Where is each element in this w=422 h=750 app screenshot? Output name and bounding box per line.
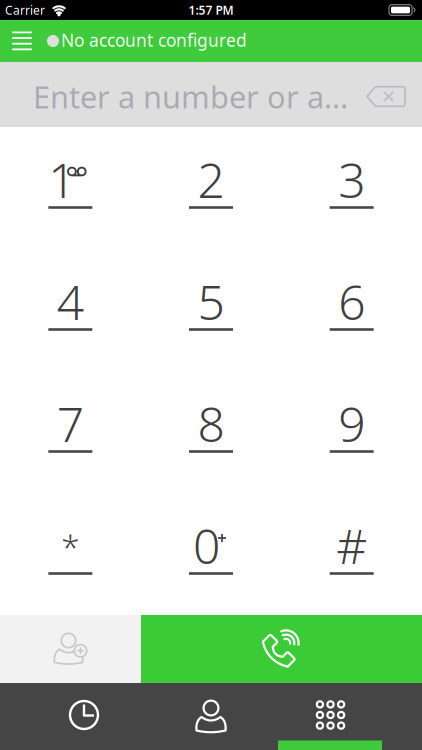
staticText: 3 [338, 148, 365, 211]
staticText: Carrier [5, 2, 45, 18]
button[interactable]: 7 [0, 371, 141, 493]
button[interactable]: 6 [281, 249, 422, 371]
button[interactable]: Call [141, 615, 422, 683]
staticText: * [61, 524, 79, 569]
staticText: 7 [57, 392, 84, 455]
button[interactable]: History [0, 683, 141, 750]
button[interactable]: # [281, 493, 422, 615]
button[interactable]: 9 [281, 371, 422, 493]
button[interactable]: Delete [360, 74, 412, 118]
staticText: Enter a number or a... [33, 76, 348, 117]
button[interactable]: 1 [0, 127, 141, 249]
button[interactable]: 8 [141, 371, 281, 493]
button[interactable]: Menu [0, 20, 44, 62]
button[interactable]: Dialer [281, 683, 422, 750]
staticText: 1 [48, 148, 75, 211]
button[interactable]: 4 [0, 249, 141, 371]
staticText: 1:57 PM [188, 2, 233, 18]
staticText: 8 [197, 392, 224, 455]
staticText: 5 [197, 270, 224, 333]
button[interactable]: 2 [141, 127, 281, 249]
staticText: No account configured [61, 28, 247, 51]
staticText: 0 [193, 514, 220, 577]
staticText: # [336, 514, 367, 577]
button[interactable]: 3 [281, 127, 422, 249]
staticText: 6 [338, 270, 365, 333]
button[interactable]: Add contact [0, 615, 141, 683]
button[interactable]: Contacts [141, 683, 281, 750]
staticText: 2 [197, 148, 224, 211]
button[interactable]: * [0, 493, 141, 615]
staticText: 9 [338, 392, 365, 455]
button[interactable]: 5 [141, 249, 281, 371]
staticText: 4 [57, 270, 84, 333]
button[interactable]: 0 [141, 493, 281, 615]
